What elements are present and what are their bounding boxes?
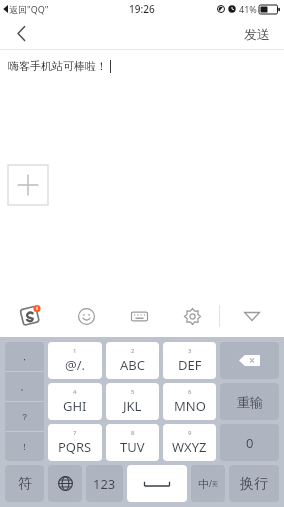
button[interactable]: 3 xyxy=(163,342,216,379)
staticText: 8 xyxy=(131,429,135,437)
staticText: 9 xyxy=(188,429,192,437)
staticText: ABC xyxy=(120,356,145,374)
staticText: ！ xyxy=(20,441,29,452)
button[interactable]: 4 xyxy=(48,383,102,420)
staticText: 重输 xyxy=(237,394,263,410)
staticText: DEF xyxy=(178,356,202,374)
staticText: 符 xyxy=(18,475,32,493)
button[interactable]: 换行 xyxy=(229,465,279,502)
staticText: 0 xyxy=(246,434,254,452)
button[interactable]: 123 xyxy=(86,465,123,502)
staticText: 换行 xyxy=(240,475,268,493)
button[interactable]: Keyboard layout xyxy=(113,295,166,337)
staticText: 3 xyxy=(188,347,192,355)
button[interactable]: Space xyxy=(127,465,187,502)
staticText: 返回"QQ" xyxy=(9,3,49,15)
button[interactable]: Hide keyboard xyxy=(220,295,284,337)
staticText: 7 xyxy=(73,429,77,437)
staticText: 19:26 xyxy=(129,2,155,16)
button[interactable]: Back xyxy=(0,18,42,49)
staticText: 。 xyxy=(20,381,29,392)
staticText: / xyxy=(209,478,212,489)
button[interactable]: 符 xyxy=(5,465,44,502)
button[interactable]: Backspace xyxy=(220,342,279,379)
button[interactable]: ？ xyxy=(5,402,44,431)
button[interactable]: Emoji xyxy=(60,295,113,337)
staticText: 4 xyxy=(73,388,77,396)
staticText: ？ xyxy=(20,411,29,422)
button[interactable]: Settings xyxy=(166,295,219,337)
staticText: @/. xyxy=(65,356,86,374)
staticText: 5 xyxy=(131,388,135,396)
button[interactable]: 8 xyxy=(106,424,159,461)
staticText: 6 xyxy=(188,388,192,396)
button[interactable]: Sogou input xyxy=(0,295,60,337)
staticText: TUV xyxy=(120,438,145,456)
staticText: MNO xyxy=(174,397,206,415)
staticText: 嗨客手机站可棒啦！ xyxy=(8,59,107,73)
staticText: 发送 xyxy=(244,26,270,42)
staticText: 中 xyxy=(198,477,209,491)
button[interactable]: 发送 xyxy=(230,18,284,49)
staticText: PQRS xyxy=(58,438,92,456)
button[interactable]: 5 xyxy=(106,383,159,420)
button[interactable]: ！ xyxy=(5,432,44,461)
button[interactable]: 6 xyxy=(163,383,216,420)
staticText: 1 xyxy=(73,347,77,355)
button[interactable]: Add attachment xyxy=(8,165,48,205)
staticText: 123 xyxy=(93,475,116,493)
staticText: ， xyxy=(20,351,29,362)
button[interactable]: 重输 xyxy=(220,383,279,420)
button[interactable]: 7 xyxy=(48,424,102,461)
staticText: WXYZ xyxy=(172,438,207,456)
button[interactable]: 0 xyxy=(220,424,279,461)
button[interactable]: 9 xyxy=(163,424,216,461)
staticText: 41% xyxy=(239,3,257,15)
button[interactable]: 1 xyxy=(48,342,102,379)
staticText: 2 xyxy=(131,347,135,355)
staticText: JKL xyxy=(123,397,142,415)
staticText: 英 xyxy=(212,480,218,488)
button[interactable]: Chinese English toggle xyxy=(191,465,225,502)
button[interactable]: ， xyxy=(5,342,44,371)
button[interactable]: 2 xyxy=(106,342,159,379)
staticText: GHI xyxy=(63,397,87,415)
button[interactable]: Switch input language xyxy=(48,465,82,502)
